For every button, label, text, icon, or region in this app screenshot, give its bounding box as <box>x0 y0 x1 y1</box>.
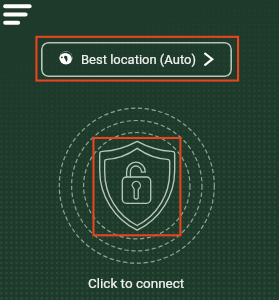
staticText: Best location (Auto) <box>81 52 196 67</box>
button[interactable]: Connect <box>93 137 182 236</box>
staticText: Click to connect <box>88 275 185 291</box>
button[interactable]: Best location (Auto) <box>41 42 232 77</box>
button[interactable]: Menu <box>0 0 36 30</box>
